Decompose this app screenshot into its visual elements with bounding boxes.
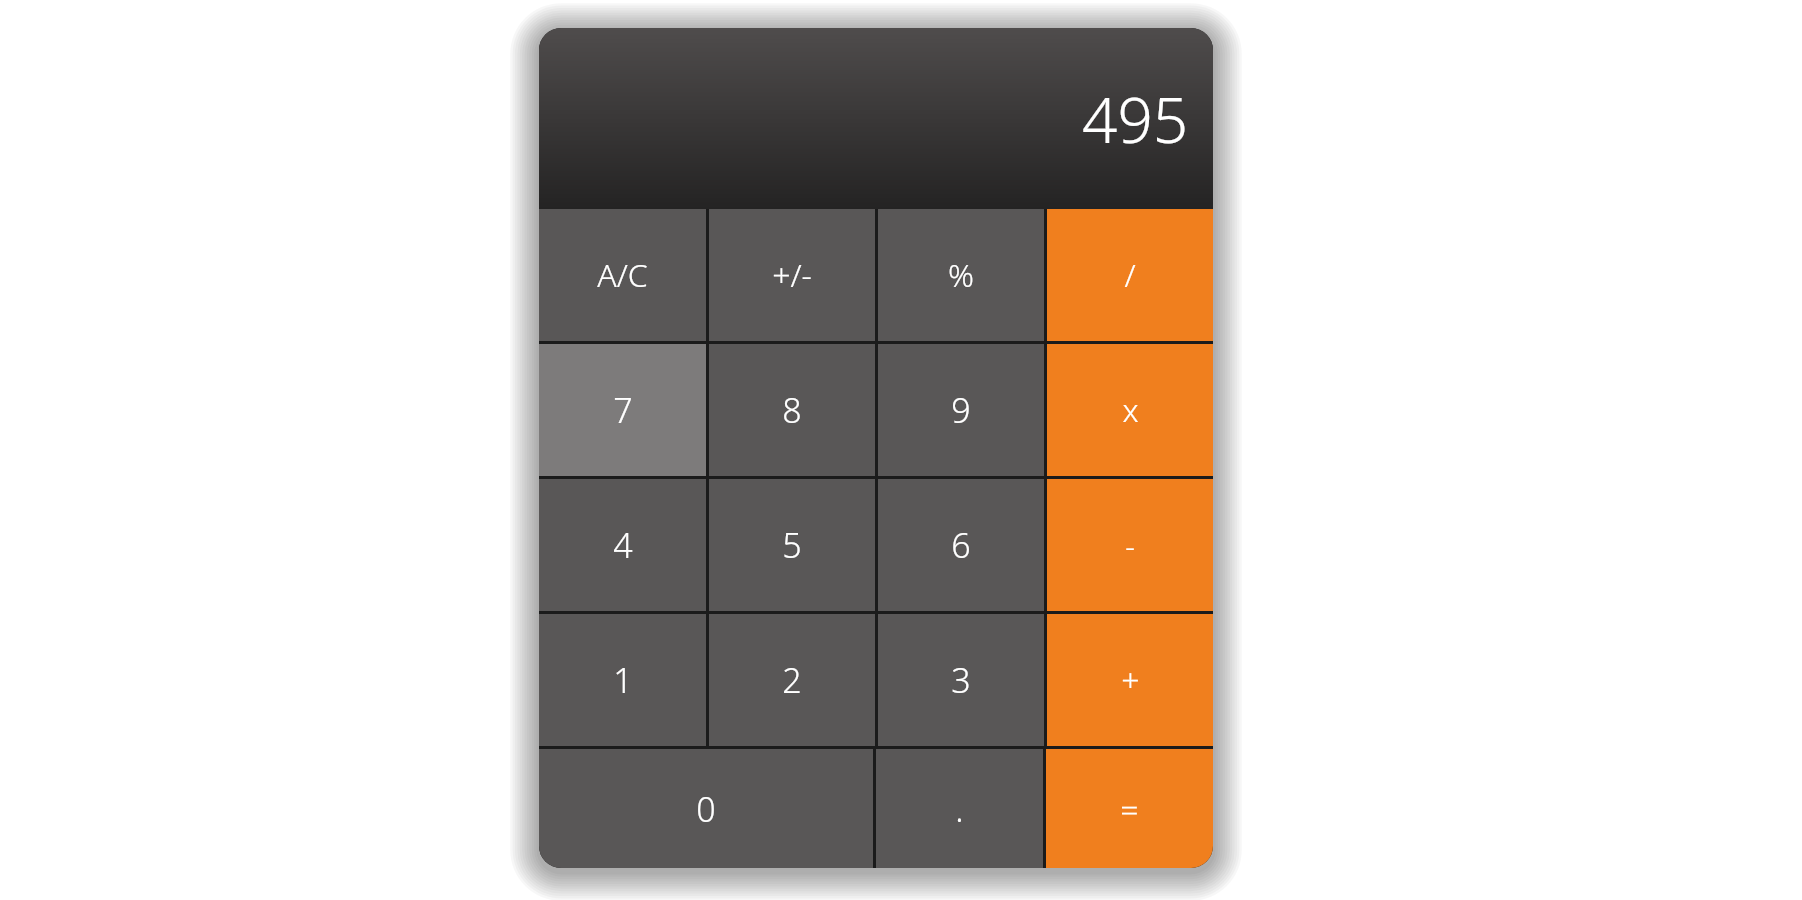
staticText: - xyxy=(1125,525,1135,566)
staticText: . xyxy=(955,786,964,832)
button[interactable]: % xyxy=(878,209,1044,341)
staticText: = xyxy=(1120,787,1139,831)
button[interactable]: 4 xyxy=(539,479,706,611)
button[interactable]: Minus xyxy=(1047,479,1213,611)
button[interactable]: 9 xyxy=(878,344,1044,476)
staticText: A/C xyxy=(597,253,648,297)
button[interactable]: Multiply xyxy=(1047,344,1213,476)
staticText: + xyxy=(1121,658,1140,702)
button[interactable]: 5 xyxy=(709,479,875,611)
staticText: 5 xyxy=(782,522,802,568)
button[interactable]: 8 xyxy=(709,344,875,476)
button[interactable]: 1 xyxy=(539,614,706,746)
staticText: x xyxy=(1122,388,1139,432)
button[interactable]: Plus xyxy=(1047,614,1213,746)
button[interactable]: 3 xyxy=(878,614,1044,746)
staticText: 7 xyxy=(613,387,633,433)
staticText: 6 xyxy=(951,522,971,568)
button[interactable]: A/C xyxy=(539,209,706,341)
staticText: 8 xyxy=(782,387,802,433)
button[interactable]: 7 xyxy=(539,344,706,476)
button[interactable]: 495 xyxy=(539,28,1213,209)
staticText: 3 xyxy=(951,657,971,703)
button[interactable]: Equals xyxy=(1046,749,1213,868)
staticText: % xyxy=(948,253,974,297)
button[interactable]: +/- xyxy=(709,209,875,341)
staticText: 0 xyxy=(696,786,716,832)
button[interactable]: 0 xyxy=(539,749,873,868)
button[interactable]: 2 xyxy=(709,614,875,746)
staticText: 2 xyxy=(782,657,802,703)
button[interactable]: Decimal point xyxy=(876,749,1043,868)
staticText: +/- xyxy=(772,253,812,297)
button[interactable]: 6 xyxy=(878,479,1044,611)
staticText: / xyxy=(1124,253,1136,297)
staticText: 495 xyxy=(1082,77,1189,161)
staticText: 1 xyxy=(613,657,633,703)
button[interactable]: Divide xyxy=(1047,209,1213,341)
staticText: 4 xyxy=(613,522,633,568)
staticText: 9 xyxy=(951,387,971,433)
